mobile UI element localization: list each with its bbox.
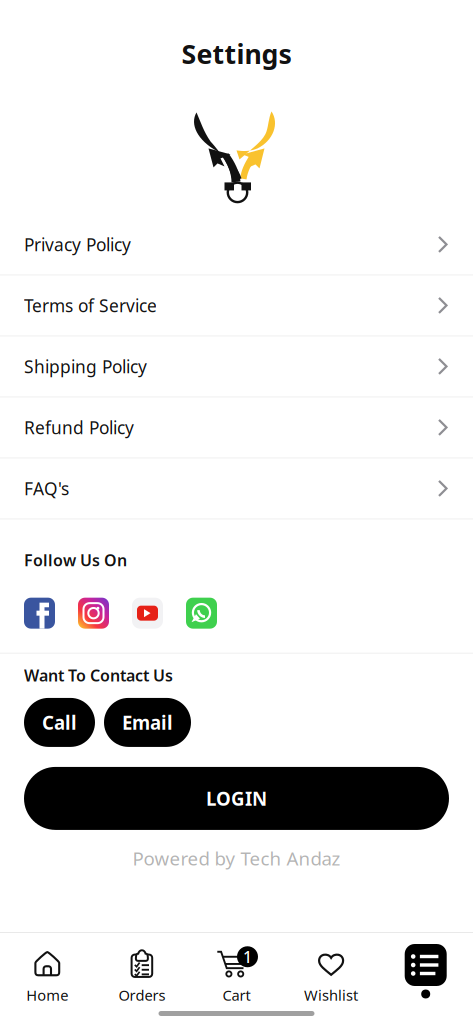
button[interactable]: LOGIN: [24, 767, 449, 830]
button[interactable]: Call: [24, 698, 95, 747]
button[interactable]: Email: [104, 698, 191, 747]
staticText: Follow Us On: [24, 549, 127, 571]
button[interactable]: FAQ's: [0, 458, 473, 519]
button[interactable]: Shipping Policy: [0, 336, 473, 397]
staticText: Want To Contact Us: [24, 665, 173, 686]
button[interactable]: Instagram: [78, 598, 109, 629]
staticText: Email: [122, 710, 173, 735]
staticText: Orders: [118, 985, 165, 1005]
staticText: 1: [243, 946, 252, 967]
button[interactable]: YouTube: [132, 598, 163, 629]
button[interactable]: Wishlist: [284, 931, 378, 1005]
button[interactable]: WhatsApp: [186, 598, 217, 629]
staticText: Settings: [181, 36, 291, 71]
staticText: Home: [26, 985, 68, 1005]
staticText: Terms of Service: [24, 294, 157, 317]
staticText: Refund Policy: [24, 416, 134, 439]
button[interactable]: Home: [0, 931, 95, 1005]
button[interactable]: 1: [189, 931, 284, 1005]
staticText: Powered by Tech Andaz: [132, 846, 340, 871]
staticText: Wishlist: [304, 985, 358, 1005]
staticText: LOGIN: [206, 786, 267, 811]
staticText: Shipping Policy: [24, 355, 147, 378]
button[interactable]: Facebook: [24, 598, 55, 629]
staticText: Call: [42, 710, 77, 735]
button[interactable]: Orders: [95, 931, 189, 1005]
staticText: FAQ's: [24, 477, 69, 500]
staticText: Privacy Policy: [24, 233, 131, 256]
button[interactable]: Privacy Policy: [0, 214, 473, 275]
button[interactable]: Terms of Service: [0, 275, 473, 336]
button[interactable]: Menu: [378, 933, 473, 1003]
staticText: Cart: [222, 985, 250, 1005]
button[interactable]: Refund Policy: [0, 397, 473, 458]
